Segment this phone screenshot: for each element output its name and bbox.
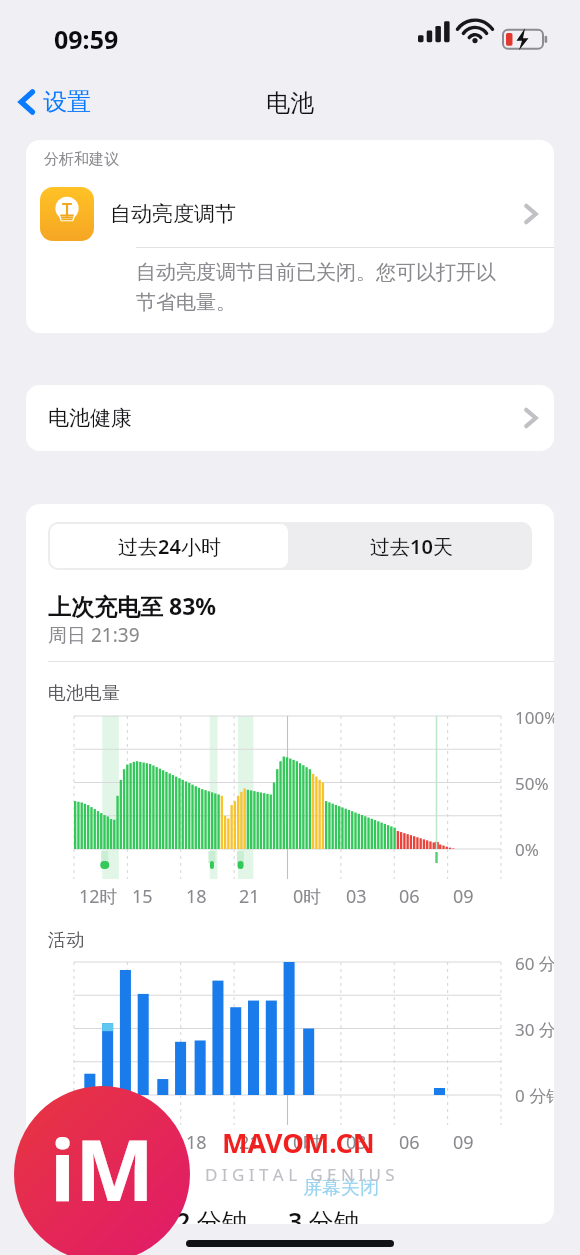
staticText: 2 分钟 bbox=[176, 1204, 247, 1224]
staticText: 过去24小时 bbox=[118, 533, 221, 560]
staticText: 分析和建议 bbox=[44, 150, 119, 169]
staticText: 21 bbox=[239, 1130, 260, 1155]
staticText: 03 bbox=[346, 884, 367, 909]
staticText: 50% bbox=[515, 772, 549, 795]
button[interactable]: 过去10天 bbox=[290, 522, 532, 570]
staticText: 12时 bbox=[79, 1130, 118, 1155]
staticText: 09:59 bbox=[54, 22, 119, 56]
staticText: 03 bbox=[346, 1130, 367, 1155]
staticText: 0% bbox=[515, 838, 539, 861]
staticText: 电池健康 bbox=[48, 405, 132, 431]
staticText: 上次充电至 83% bbox=[48, 590, 217, 621]
staticText: 06 bbox=[399, 884, 420, 909]
staticText: 设置 bbox=[43, 87, 91, 117]
staticText: iM bbox=[50, 1111, 155, 1225]
staticText: 周日 21:39 bbox=[48, 622, 140, 648]
staticText: 自动亮度调节 bbox=[110, 201, 236, 227]
staticText: 屏幕关闭 bbox=[303, 1176, 379, 1200]
staticText: 30 分钟 bbox=[515, 1018, 554, 1041]
staticText: 电池电量 bbox=[48, 682, 120, 705]
button[interactable]: 设置 bbox=[10, 76, 99, 128]
staticText: 0 分钟 bbox=[515, 1084, 554, 1107]
staticText: MAVOM.CN bbox=[222, 1124, 375, 1161]
staticText: 电池 bbox=[0, 88, 580, 118]
staticText: 21 bbox=[239, 884, 260, 909]
staticText: 过去10天 bbox=[370, 533, 453, 560]
staticText: 18 bbox=[186, 1130, 207, 1155]
staticText: 3 分钟 bbox=[288, 1204, 359, 1224]
staticText: 0时 bbox=[293, 1130, 322, 1155]
staticText: 15 bbox=[132, 1130, 153, 1155]
staticText: 18 bbox=[186, 884, 207, 909]
staticText: 100% bbox=[515, 706, 554, 729]
button[interactable]: 过去24小时 bbox=[48, 522, 290, 570]
staticText: 自动亮度调节目前已关闭。您可以打开以 节省电量。 bbox=[136, 260, 554, 315]
staticText: 活动 bbox=[48, 929, 84, 952]
staticText: 15 bbox=[132, 884, 153, 909]
staticText: 06 bbox=[399, 1130, 420, 1155]
staticText: 0时 bbox=[293, 884, 322, 909]
staticText: 09 bbox=[453, 884, 474, 909]
staticText: 12时 bbox=[79, 884, 118, 909]
button[interactable]: 电池健康 bbox=[26, 385, 554, 451]
button[interactable]: 自动亮度调节 bbox=[26, 182, 554, 246]
staticText: D I G I T A L G E N I U S bbox=[205, 1163, 395, 1186]
staticText: 60 分钟 bbox=[515, 952, 554, 975]
staticText: 09 bbox=[453, 1130, 474, 1155]
